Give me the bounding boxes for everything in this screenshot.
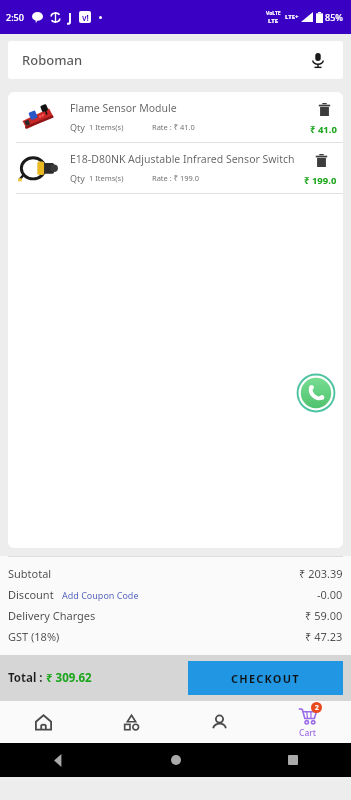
staticText: ₹ 47.23: [305, 629, 343, 644]
staticText: Rate : ₹ 41.0: [152, 122, 195, 132]
staticText: ₹ 309.62: [46, 670, 92, 686]
staticText: 2: [315, 703, 319, 712]
staticText: GST (18%): [8, 629, 60, 644]
staticText: E18-D80NK Adjustable Infrared Sensor Swi…: [70, 152, 300, 166]
staticText: LTE+: [285, 13, 299, 21]
button[interactable]: Account: [175, 701, 263, 743]
staticText: 1 Items(s): [89, 122, 124, 132]
button[interactable]: Roboman: [8, 41, 343, 79]
staticText: VoLTE: [266, 10, 281, 17]
button[interactable]: 2: [263, 701, 351, 743]
staticText: Qty: [70, 172, 85, 184]
staticText: Rate : ₹ 199.0: [152, 173, 200, 183]
staticText: ₹ 41.0: [310, 123, 337, 136]
staticText: LTE: [268, 17, 279, 25]
staticText: CHECKOUT: [231, 671, 300, 686]
button[interactable]: Voice search: [307, 49, 329, 71]
staticText: ₹ 59.00: [305, 608, 343, 623]
staticText: v!: [82, 12, 89, 23]
staticText: Delivery Charges: [8, 608, 96, 623]
staticText: Qty: [70, 121, 85, 133]
staticText: 85%: [325, 11, 343, 23]
button[interactable]: Home: [117, 743, 234, 777]
button[interactable]: Categories: [87, 701, 175, 743]
staticText: 2:50: [6, 11, 24, 23]
staticText: Cart: [299, 727, 317, 739]
staticText: Discount: [8, 587, 54, 602]
staticText: Subtotal: [8, 566, 52, 581]
staticText: -0.00: [317, 587, 343, 602]
staticText: ₹ 203.39: [299, 566, 343, 581]
button[interactable]: Home: [0, 701, 87, 743]
button[interactable]: Flame Sensor Module: [8, 92, 343, 142]
button[interactable]: E18-D80NK Adjustable Infrared Sensor Swi…: [8, 143, 343, 193]
staticText: 1 Items(s): [89, 173, 124, 183]
button[interactable]: Back: [0, 743, 117, 777]
staticText: Flame Sensor Module: [70, 101, 177, 115]
button[interactable]: Chat on WhatsApp: [297, 374, 335, 412]
button[interactable]: Recents: [234, 743, 351, 777]
staticText: Add Coupon Code: [62, 589, 139, 601]
button[interactable]: Remove item: [314, 99, 334, 119]
button[interactable]: Remove item: [311, 150, 331, 170]
staticText: Total :: [8, 670, 46, 686]
staticText: ₹ 199.0: [304, 174, 337, 187]
staticText: Roboman: [22, 51, 83, 69]
button[interactable]: Add Coupon Code: [62, 589, 139, 601]
button[interactable]: CHECKOUT: [188, 661, 343, 695]
staticText: J: [68, 9, 72, 25]
